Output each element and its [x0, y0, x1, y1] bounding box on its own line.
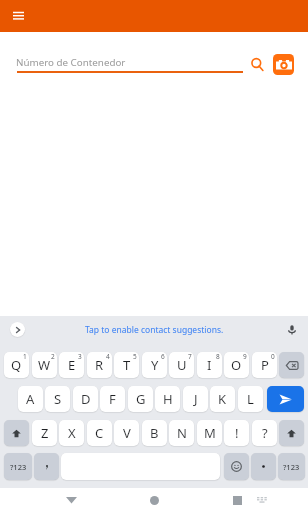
staticText: R — [95, 356, 104, 374]
staticText: S — [54, 390, 62, 408]
staticText: G — [136, 390, 146, 408]
staticText: 2 — [51, 352, 55, 361]
staticText: 8 — [216, 352, 220, 361]
button[interactable]: Backspace — [279, 352, 304, 378]
staticText: ! — [235, 424, 239, 442]
staticText: 3 — [78, 352, 82, 361]
staticText: Número de Contenedor — [16, 56, 126, 69]
staticText: 5 — [133, 352, 137, 361]
button[interactable]: Emoji — [224, 453, 249, 480]
button[interactable]: Shift — [279, 420, 304, 446]
staticText: L — [247, 390, 254, 408]
staticText: 7 — [188, 352, 192, 361]
staticText: 4 — [106, 352, 110, 361]
staticText: U — [177, 356, 187, 374]
staticText: ? — [262, 424, 268, 442]
staticText: V — [123, 424, 131, 442]
staticText: Y — [151, 356, 159, 374]
staticText: J — [194, 390, 198, 408]
staticText: W — [38, 356, 51, 374]
staticText: C — [95, 424, 104, 442]
staticText: D — [81, 390, 91, 408]
button[interactable]: K — [210, 386, 235, 412]
button[interactable]: X — [59, 420, 84, 446]
button[interactable]: Search — [247, 54, 267, 74]
staticText: F — [109, 390, 116, 408]
button[interactable]: ?123 — [278, 453, 305, 480]
button[interactable]: Menu — [8, 6, 29, 27]
staticText: K — [218, 390, 227, 408]
staticText: 1 — [23, 352, 27, 361]
staticText: 0 — [271, 352, 275, 361]
staticText: M — [204, 424, 216, 442]
button[interactable]: S — [45, 386, 70, 412]
button[interactable]: T — [114, 352, 139, 378]
button[interactable]: ?123 — [4, 453, 32, 480]
button[interactable]: V — [114, 420, 139, 446]
staticText: B — [150, 424, 159, 442]
button[interactable]: Y — [142, 352, 167, 378]
button[interactable]: Send — [267, 386, 304, 412]
button[interactable]: Switch keyboard — [254, 492, 270, 508]
button[interactable]: Period — [251, 453, 276, 480]
button[interactable]: Recents — [229, 492, 245, 508]
button[interactable]: M — [197, 420, 222, 446]
button[interactable]: F — [100, 386, 125, 412]
button[interactable]: Voice input — [284, 322, 299, 337]
staticText: H — [163, 390, 173, 408]
button[interactable]: B — [142, 420, 167, 446]
button[interactable]: A — [18, 386, 43, 412]
button[interactable]: W — [32, 352, 57, 378]
button[interactable]: Shift — [4, 420, 29, 446]
staticText: O — [231, 356, 242, 374]
staticText: Q — [11, 356, 22, 374]
button[interactable]: L — [238, 386, 263, 412]
button[interactable]: R — [87, 352, 112, 378]
button[interactable]: Tap to enable contact suggestions. — [85, 324, 224, 336]
button[interactable]: Scan with camera — [273, 54, 294, 75]
staticText: ?123 — [283, 462, 300, 472]
button[interactable]: Home — [146, 492, 162, 508]
button[interactable]: I — [197, 352, 222, 378]
button[interactable]: Back — [63, 492, 79, 508]
button[interactable]: N — [169, 420, 194, 446]
staticText: Z — [41, 424, 49, 442]
staticText: E — [68, 356, 76, 374]
button[interactable]: H — [155, 386, 180, 412]
button[interactable]: P — [252, 352, 277, 378]
staticText: 9 — [243, 352, 247, 361]
staticText: X — [68, 424, 76, 442]
button[interactable]: Comma — [34, 453, 59, 480]
button[interactable]: C — [87, 420, 112, 446]
staticText: 6 — [161, 352, 165, 361]
button[interactable]: O — [224, 352, 249, 378]
button[interactable]: ? — [252, 420, 277, 446]
button[interactable]: E — [59, 352, 84, 378]
button[interactable]: ! — [224, 420, 249, 446]
button[interactable]: Z — [32, 420, 57, 446]
staticText: N — [177, 424, 187, 442]
button[interactable]: U — [169, 352, 194, 378]
button[interactable]: D — [73, 386, 98, 412]
button[interactable]: Expand suggestions — [10, 322, 25, 337]
staticText: P — [261, 356, 269, 374]
button[interactable]: G — [128, 386, 153, 412]
staticText: T — [123, 356, 131, 374]
staticText: A — [26, 390, 35, 408]
button[interactable]: Q — [4, 352, 29, 378]
button[interactable]: J — [183, 386, 208, 412]
staticText: I — [207, 356, 212, 374]
staticText: ?123 — [10, 462, 27, 472]
